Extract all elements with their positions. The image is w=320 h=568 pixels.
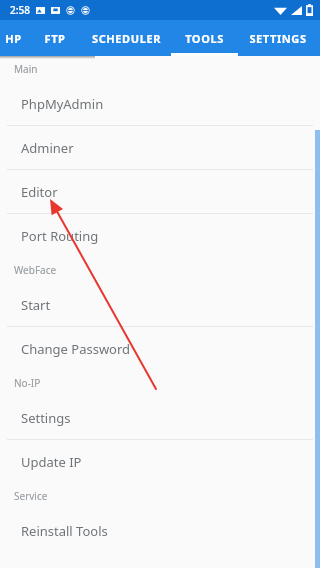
staticText: TOOLS xyxy=(185,31,224,46)
staticText: Start xyxy=(21,296,51,314)
button[interactable]: Settings xyxy=(0,396,320,439)
staticText: Change Password xyxy=(21,340,131,358)
staticText: FTP xyxy=(44,31,66,46)
button[interactable]: Start xyxy=(0,283,320,326)
button[interactable]: FTP xyxy=(38,20,72,56)
button[interactable]: Update IP xyxy=(0,440,320,483)
button[interactable]: Adminer xyxy=(0,126,320,169)
button[interactable]: Editor xyxy=(0,170,320,213)
button[interactable]: TOOLS xyxy=(174,20,234,56)
button[interactable]: Change Password xyxy=(0,327,320,370)
staticText: No-IP xyxy=(14,376,41,390)
button[interactable]: Reinstall Tools xyxy=(0,509,320,552)
staticText: WebFace xyxy=(14,263,57,277)
staticText: PhpMyAdmin xyxy=(21,95,104,113)
button[interactable]: PhpMyAdmin xyxy=(0,82,320,125)
staticText: Main xyxy=(14,62,38,76)
button[interactable]: SETTINGS xyxy=(244,20,312,56)
button[interactable]: SCHEDULER xyxy=(90,20,162,56)
staticText: Update IP xyxy=(21,453,82,471)
staticText: SETTINGS xyxy=(249,31,307,46)
staticText: Editor xyxy=(21,183,58,201)
staticText: SCHEDULER xyxy=(92,31,161,46)
staticText: Reinstall Tools xyxy=(21,522,108,540)
button[interactable]: Port Routing xyxy=(0,214,320,257)
staticText: Settings xyxy=(21,409,71,427)
staticText: HP xyxy=(5,31,22,46)
staticText: Adminer xyxy=(21,139,74,157)
staticText: Port Routing xyxy=(21,227,99,245)
staticText: 2:58 xyxy=(10,3,30,17)
staticText: Service xyxy=(14,489,48,503)
button[interactable]: HP xyxy=(2,20,24,56)
